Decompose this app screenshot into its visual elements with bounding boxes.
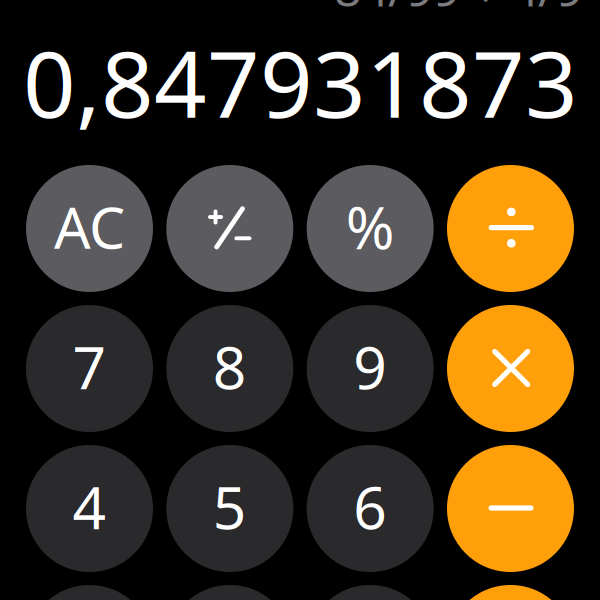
staticText: 4 <box>72 467 106 545</box>
button[interactable]: 9 <box>307 305 434 432</box>
staticText: 9 <box>353 327 387 405</box>
button[interactable]: Multiply <box>447 305 574 432</box>
button[interactable]: 3 <box>307 585 434 600</box>
button[interactable]: 6 <box>307 445 434 572</box>
button[interactable]: 2 <box>166 585 293 600</box>
button[interactable]: Divide <box>447 165 574 292</box>
button[interactable]: 7 <box>26 305 153 432</box>
button[interactable]: 5 <box>166 445 293 572</box>
staticText: 0,847931873 <box>23 21 578 143</box>
button[interactable]: Plus <box>447 585 574 600</box>
staticText: AC <box>54 188 125 264</box>
staticText: 8 <box>213 327 247 405</box>
staticText: 6 <box>353 467 387 545</box>
button[interactable]: % <box>307 165 434 292</box>
button[interactable]: 8 <box>166 305 293 432</box>
staticText: 5 <box>213 467 247 545</box>
button[interactable]: 1 <box>26 585 153 600</box>
button[interactable]: AC <box>26 165 153 292</box>
staticText: 7 <box>72 327 106 405</box>
button[interactable]: Plus minus <box>166 165 293 292</box>
staticText: 84/99 + 4/9 <box>334 0 583 20</box>
staticText: % <box>346 187 395 265</box>
button[interactable]: Minus <box>447 445 574 572</box>
button[interactable]: 4 <box>26 445 153 572</box>
